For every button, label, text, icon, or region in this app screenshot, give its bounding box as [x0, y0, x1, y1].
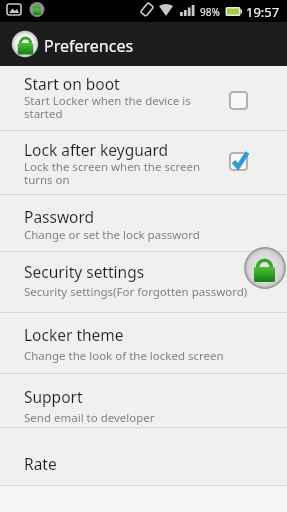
button[interactable]: Password: [0, 195, 287, 252]
staticText: Lock after keyguard: [24, 139, 169, 160]
staticText: 98%: [200, 5, 220, 19]
staticText: Support: [24, 386, 83, 407]
button[interactable]: [244, 247, 286, 289]
staticText: Change or set the lock password: [24, 227, 200, 243]
button[interactable]: Security settings: [0, 252, 287, 313]
staticText: Change the look of the locked screen: [24, 348, 224, 364]
button[interactable]: Locker theme: [0, 313, 287, 374]
staticText: 19:57: [246, 3, 280, 21]
staticText: Security settings: [24, 261, 145, 282]
staticText: Password: [24, 206, 95, 227]
staticText: Start on boot: [24, 73, 120, 94]
button[interactable]: Start on boot: [0, 66, 287, 131]
staticText: Lock the screen when the screen turns on: [24, 159, 201, 188]
staticText: Security settings(For forgotten password…: [24, 284, 248, 300]
button[interactable]: Lock after keyguard: [0, 131, 287, 195]
staticText: Rate: [24, 453, 57, 474]
staticText: Send email to developer: [24, 410, 155, 426]
button[interactable]: Rate: [0, 428, 287, 486]
staticText: Start Locker when the device is started: [24, 93, 191, 122]
button[interactable]: Support: [0, 374, 287, 428]
staticText: Locker theme: [24, 324, 124, 345]
staticText: Preferences: [44, 35, 134, 57]
